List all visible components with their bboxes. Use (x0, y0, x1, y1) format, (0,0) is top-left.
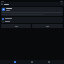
button[interactable] (32, 24, 63, 28)
button[interactable] (1, 20, 63, 23)
button[interactable] (1, 17, 63, 20)
button[interactable]: Menu (1, 3, 3, 5)
button[interactable] (1, 7, 63, 16)
button[interactable]: Search (61, 3, 63, 5)
button[interactable]: Home (13, 60, 17, 64)
button[interactable] (1, 24, 31, 28)
button[interactable]: Profile (47, 60, 51, 64)
button[interactable]: Explore (30, 60, 34, 64)
